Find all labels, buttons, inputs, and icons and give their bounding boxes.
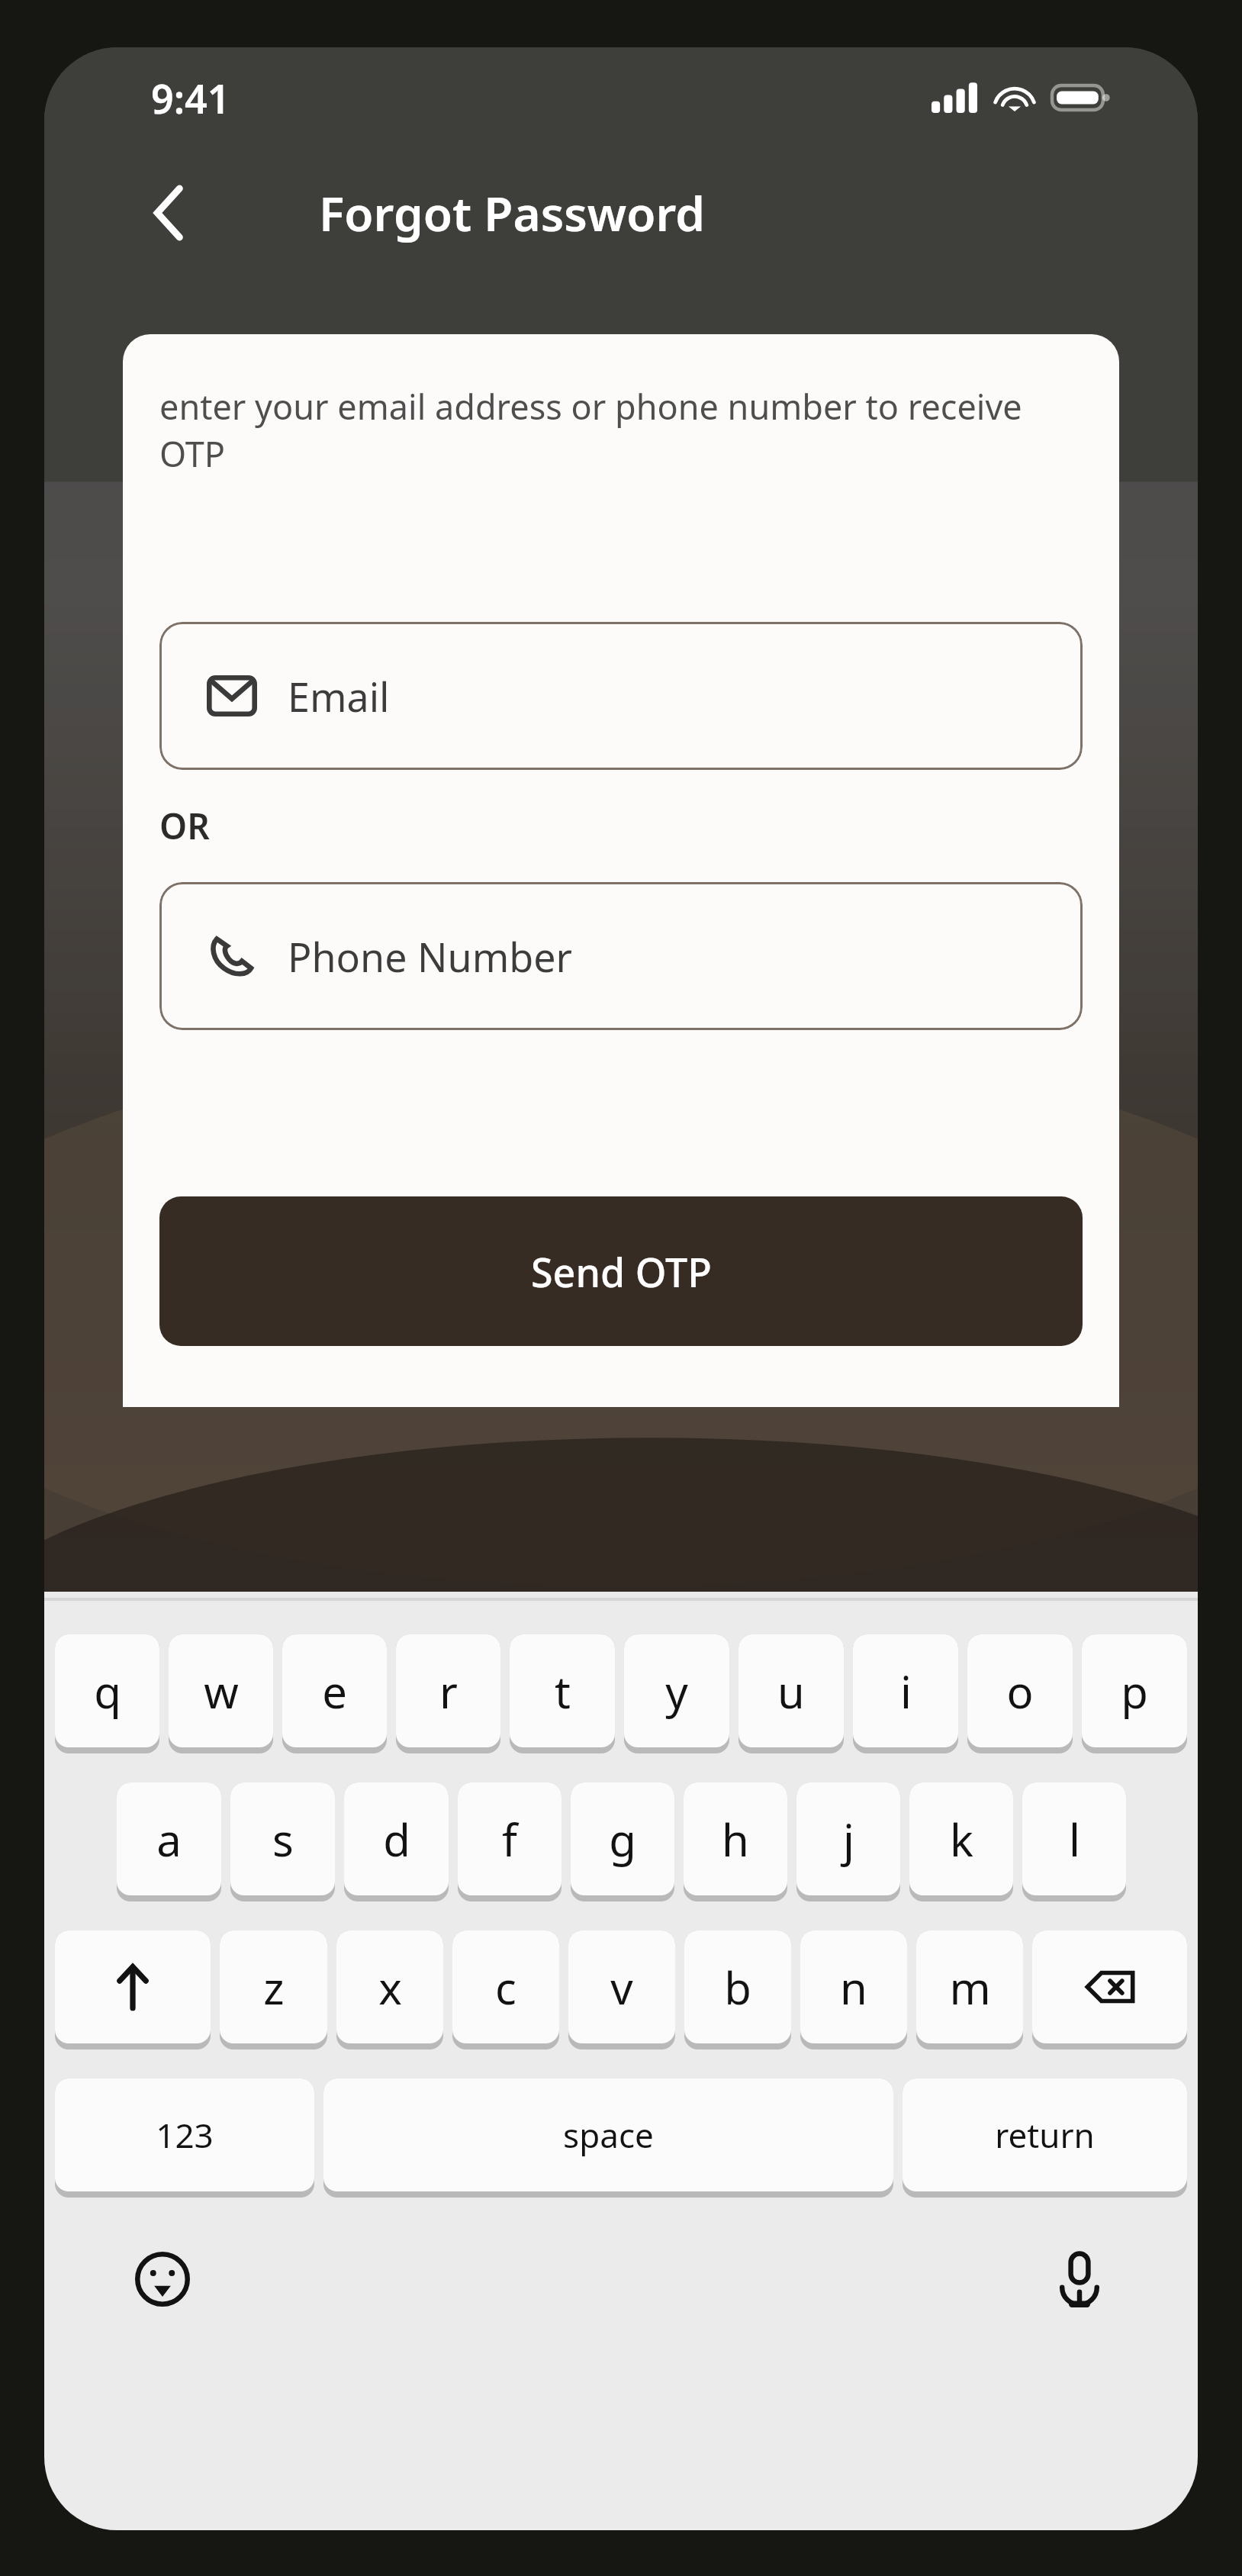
staticText: f (502, 1809, 517, 1869)
button[interactable]: Dictate (1038, 2237, 1121, 2321)
button[interactable]: t (510, 1634, 615, 1763)
staticText: c (495, 1957, 516, 2017)
button[interactable]: Phone Number (159, 882, 1083, 1030)
staticText: space (563, 2112, 654, 2158)
button[interactable]: Backspace (1032, 1930, 1187, 2059)
button[interactable]: e (282, 1634, 387, 1763)
button[interactable]: s (230, 1782, 335, 1911)
button[interactable]: r (396, 1634, 500, 1763)
staticText: r (439, 1661, 458, 1721)
button[interactable]: z (220, 1930, 327, 2059)
staticText: d (383, 1809, 410, 1869)
button[interactable]: Emoji (121, 2237, 204, 2321)
button[interactable]: 123 (55, 2079, 314, 2207)
button[interactable]: o (967, 1634, 1073, 1763)
staticText: l (1069, 1809, 1080, 1869)
button[interactable]: return (903, 2079, 1187, 2207)
button[interactable]: Send OTP (159, 1196, 1083, 1346)
button[interactable]: a (117, 1782, 221, 1911)
staticText: a (156, 1809, 182, 1869)
staticText: e (322, 1661, 347, 1721)
button[interactable]: y (624, 1634, 729, 1763)
staticText: Email (288, 669, 390, 723)
staticText: m (949, 1957, 991, 2017)
staticText: o (1006, 1661, 1034, 1721)
staticText: 123 (156, 2112, 214, 2158)
button[interactable]: n (800, 1930, 907, 2059)
button[interactable]: u (738, 1634, 844, 1763)
button[interactable]: j (796, 1782, 900, 1911)
button[interactable]: c (452, 1930, 559, 2059)
button[interactable]: space (323, 2079, 893, 2207)
button[interactable]: p (1082, 1634, 1187, 1763)
staticText: j (843, 1809, 854, 1869)
staticText: 9:41 (151, 71, 230, 125)
button[interactable]: w (169, 1634, 273, 1763)
button[interactable]: Shift (55, 1930, 211, 2059)
button[interactable]: l (1022, 1782, 1126, 1911)
button[interactable]: h (684, 1782, 787, 1911)
staticText: y (665, 1661, 688, 1721)
staticText: Send OTP (531, 1245, 712, 1299)
button[interactable]: d (344, 1782, 449, 1911)
staticText: x (378, 1957, 402, 2017)
button[interactable]: i (853, 1634, 958, 1763)
button[interactable]: b (684, 1930, 791, 2059)
staticText: w (204, 1661, 239, 1721)
button[interactable]: m (916, 1930, 1023, 2059)
staticText: p (1121, 1661, 1148, 1721)
button[interactable]: g (571, 1782, 674, 1911)
staticText: OR (159, 802, 210, 850)
staticText: q (94, 1661, 121, 1721)
staticText: v (610, 1957, 633, 2017)
button[interactable]: f (458, 1782, 561, 1911)
staticText: n (840, 1957, 867, 2017)
button[interactable]: v (568, 1930, 675, 2059)
button[interactable]: k (909, 1782, 1013, 1911)
staticText: k (950, 1809, 973, 1869)
staticText: i (900, 1661, 912, 1721)
button[interactable]: Back (134, 177, 206, 249)
button[interactable]: q (55, 1634, 159, 1763)
staticText: h (722, 1809, 749, 1869)
staticText: t (555, 1661, 571, 1721)
staticText: Forgot Password (319, 181, 705, 245)
staticText: return (995, 2112, 1095, 2158)
staticText: enter your email address or phone number… (159, 383, 1083, 477)
staticText: z (263, 1957, 285, 2017)
staticText: u (777, 1661, 805, 1721)
staticText: s (272, 1809, 294, 1869)
button[interactable]: x (336, 1930, 443, 2059)
staticText: Phone Number (288, 929, 573, 984)
staticText: b (724, 1957, 751, 2017)
staticText: g (609, 1809, 636, 1869)
button[interactable]: Email (159, 622, 1083, 770)
